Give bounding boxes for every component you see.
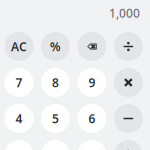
button[interactable]: Multiply bbox=[114, 68, 143, 97]
button[interactable]: All clear bbox=[4, 32, 33, 61]
button[interactable]: Subtract bbox=[114, 104, 143, 133]
button[interactable]: 7 bbox=[4, 68, 33, 97]
staticText: 8 bbox=[52, 74, 59, 90]
button[interactable]: 6 bbox=[77, 104, 106, 133]
button[interactable]: Percent bbox=[41, 32, 70, 61]
button[interactable]: 3 bbox=[77, 140, 106, 150]
button[interactable]: 8 bbox=[41, 68, 70, 97]
staticText: 7 bbox=[15, 74, 22, 90]
staticText: 4 bbox=[15, 110, 22, 126]
staticText: AC bbox=[11, 38, 27, 54]
button[interactable]: 2 bbox=[41, 140, 70, 150]
staticText: 9 bbox=[88, 74, 95, 90]
staticText: 5 bbox=[52, 110, 59, 126]
button[interactable]: 9 bbox=[77, 68, 106, 97]
button[interactable]: 4 bbox=[4, 104, 33, 133]
button[interactable]: Delete bbox=[77, 32, 106, 61]
staticText: 6 bbox=[88, 110, 95, 126]
button[interactable]: 1 bbox=[4, 140, 33, 150]
staticText: % bbox=[50, 38, 61, 54]
button[interactable]: 5 bbox=[41, 104, 70, 133]
button[interactable]: Add bbox=[114, 140, 143, 150]
staticText: 1,000 bbox=[109, 5, 140, 21]
button[interactable]: Divide bbox=[114, 32, 143, 61]
